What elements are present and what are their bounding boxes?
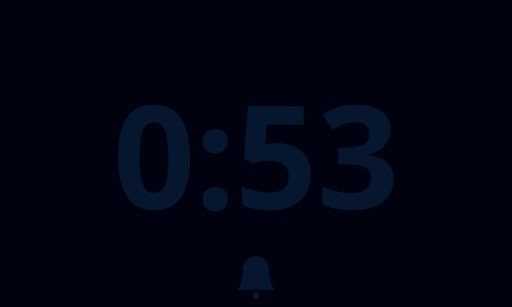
button[interactable]: 0:53: [113, 58, 399, 249]
staticText: 0:53: [113, 58, 399, 249]
button[interactable]: Alert when timer ends: [237, 255, 275, 297]
